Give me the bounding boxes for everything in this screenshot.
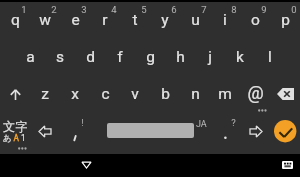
button[interactable]: m xyxy=(210,76,240,113)
staticText: c xyxy=(101,85,110,103)
staticText: h xyxy=(176,48,185,66)
button[interactable]: n xyxy=(180,76,210,113)
button[interactable]: c xyxy=(90,76,120,113)
staticText: n xyxy=(191,85,200,103)
staticText: g xyxy=(146,48,155,66)
staticText: JA xyxy=(196,119,207,130)
staticText: z xyxy=(41,85,49,103)
button[interactable]: s xyxy=(45,39,75,76)
staticText: q xyxy=(11,11,20,29)
staticText: s xyxy=(56,48,64,66)
button[interactable]: ? xyxy=(210,113,240,150)
button[interactable]: a xyxy=(15,39,45,76)
staticText: b xyxy=(161,85,170,103)
button[interactable]: j xyxy=(195,39,225,76)
button[interactable]: y xyxy=(150,2,180,39)
button[interactable]: Move cursor right xyxy=(240,113,270,150)
button[interactable]: d xyxy=(75,39,105,76)
button[interactable]: i xyxy=(210,2,240,39)
button[interactable]: Backspace xyxy=(270,76,300,113)
button[interactable]: ! xyxy=(60,113,90,150)
button[interactable]: x xyxy=(60,76,90,113)
button[interactable]: v xyxy=(120,76,150,113)
staticText: 0 xyxy=(291,4,297,15)
staticText: x xyxy=(71,85,79,103)
staticText: j xyxy=(208,48,212,66)
button[interactable]: e xyxy=(60,2,90,39)
button[interactable]: Space xyxy=(90,113,210,150)
staticText: 6 xyxy=(171,4,177,15)
button[interactable]: @ xyxy=(240,76,270,113)
button[interactable]: Move cursor left xyxy=(30,113,60,150)
staticText: 4 xyxy=(111,4,117,15)
button[interactable]: Enter xyxy=(270,113,300,150)
button[interactable]: w xyxy=(30,2,60,39)
button[interactable]: g xyxy=(135,39,165,76)
staticText: u xyxy=(191,11,200,29)
staticText: 文字 xyxy=(3,119,28,134)
staticText: 1 xyxy=(21,4,27,15)
button[interactable]: 文字 xyxy=(0,113,30,150)
button[interactable]: Switch input method xyxy=(274,154,298,177)
button[interactable]: u xyxy=(180,2,210,39)
button[interactable]: b xyxy=(150,76,180,113)
button[interactable]: q xyxy=(0,2,30,39)
staticText: @ xyxy=(247,82,264,103)
staticText: 8 xyxy=(231,4,237,15)
staticText: p xyxy=(281,11,290,29)
button[interactable]: k xyxy=(225,39,255,76)
button[interactable]: Hide keyboard xyxy=(71,154,102,177)
staticText: 7 xyxy=(201,4,207,15)
staticText: w xyxy=(39,11,51,29)
staticText: d xyxy=(86,48,95,66)
staticText: 9 xyxy=(261,4,267,15)
staticText: k xyxy=(236,48,244,66)
staticText: 2 xyxy=(51,4,57,15)
staticText: ! xyxy=(81,117,84,128)
button[interactable]: t xyxy=(120,2,150,39)
staticText: 5 xyxy=(141,4,147,15)
staticText: e xyxy=(71,11,80,29)
staticText: l xyxy=(268,48,272,66)
button[interactable]: l xyxy=(255,39,285,76)
button[interactable]: Shift xyxy=(0,76,30,113)
button[interactable]: r xyxy=(90,2,120,39)
button[interactable]: f xyxy=(105,39,135,76)
staticText: i xyxy=(223,11,227,29)
button[interactable]: z xyxy=(30,76,60,113)
staticText: m xyxy=(218,85,232,103)
staticText: v xyxy=(131,85,139,103)
staticText: あ A 1 xyxy=(3,133,26,143)
staticText: o xyxy=(251,11,260,29)
staticText: a xyxy=(26,48,35,66)
button[interactable]: p xyxy=(270,2,300,39)
staticText: f xyxy=(117,48,123,66)
staticText: t xyxy=(132,11,138,29)
staticText: ? xyxy=(231,117,236,128)
staticText: 3 xyxy=(81,4,87,15)
staticText: y xyxy=(161,11,169,29)
staticText: r xyxy=(102,11,108,29)
button[interactable]: o xyxy=(240,2,270,39)
button[interactable]: h xyxy=(165,39,195,76)
